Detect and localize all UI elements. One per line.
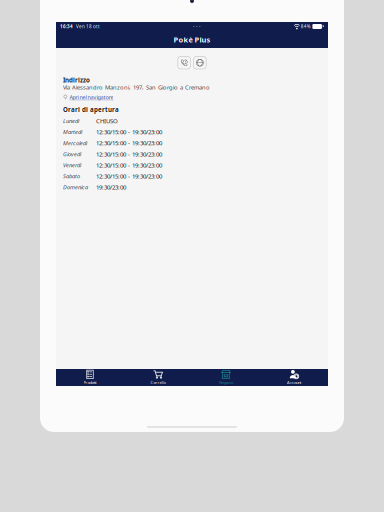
staticText: 16:34: [60, 23, 73, 30]
staticText: Sabato: [63, 172, 80, 180]
button[interactable]: Carrello: [124, 369, 192, 386]
staticText: Account: [287, 380, 301, 385]
staticText: Ven 18 ott: [76, 23, 100, 30]
staticText: Via Alessandro Manzoni, 197, San Giorgio…: [63, 83, 210, 91]
staticText: Orari di apertura: [63, 105, 119, 114]
staticText: • • •: [193, 24, 201, 29]
staticText: Martedì: [63, 128, 82, 136]
staticText: 19:30/23:00: [96, 183, 126, 191]
staticText: Lunedì: [63, 117, 79, 125]
staticText: 84%: [301, 23, 311, 30]
button[interactable]: Apri nel navigatore: [63, 93, 113, 101]
staticText: Giovedì: [63, 150, 81, 158]
staticText: 12:30/15:00 - 19:30/23:00: [96, 150, 162, 158]
staticText: 12:30/15:00 - 19:30/23:00: [96, 161, 162, 169]
staticText: 12:30/15:00 - 19:30/23:00: [96, 172, 162, 180]
staticText: Prodotti: [83, 380, 96, 385]
staticText: Mercoledì: [63, 139, 87, 147]
staticText: Negozio: [219, 380, 233, 385]
staticText: Carrello: [150, 380, 165, 385]
staticText: Apri nel navigatore: [69, 93, 113, 101]
staticText: Indirizzo: [63, 76, 90, 84]
staticText: 12:30/15:00 - 19:30/23:00: [96, 139, 162, 147]
staticText: Domenica: [63, 183, 88, 191]
staticText: Pokè Plus: [173, 34, 210, 45]
staticText: 12:30/15:00 - 19:30/23:00: [96, 128, 162, 136]
staticText: CHIUSO: [96, 117, 118, 125]
button[interactable]: Sito web: [194, 56, 206, 69]
button[interactable]: Prodotti: [56, 369, 124, 386]
staticText: Venerdì: [63, 161, 81, 169]
button[interactable]: Account: [260, 369, 328, 386]
button[interactable]: Chiama: [178, 56, 190, 69]
button[interactable]: Negozio: [192, 369, 260, 386]
